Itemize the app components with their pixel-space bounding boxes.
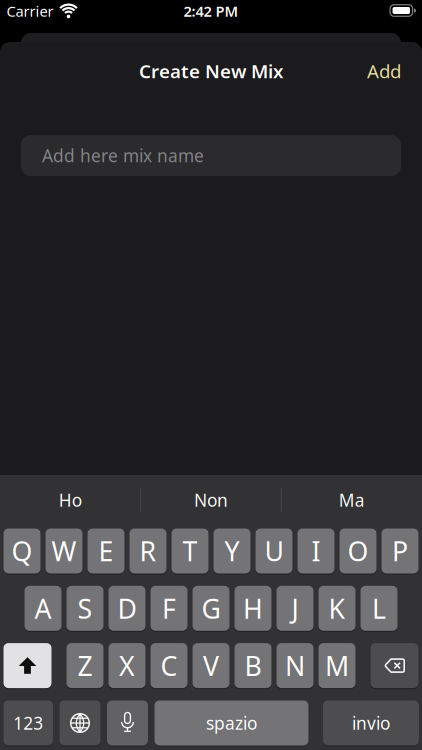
staticText: Z [77,648,92,683]
button[interactable]: C [150,642,187,689]
staticText: 123 [13,711,43,734]
staticText: Add [367,59,401,83]
button[interactable]: F [150,585,187,632]
button[interactable]: O [339,527,376,574]
button[interactable]: Next keyboard [59,699,100,746]
staticText: M [325,648,349,683]
staticText: W [51,533,76,569]
button[interactable]: Non [151,480,271,520]
button[interactable]: E [87,527,124,574]
staticText: O [347,533,368,569]
button[interactable]: X [108,642,145,689]
staticText: R [139,533,156,569]
staticText: Create New Mix [139,59,283,83]
button[interactable]: Y [213,527,250,574]
staticText: 2:42 PM [183,1,238,21]
button[interactable]: A [24,585,61,632]
button[interactable]: spazio [154,699,308,746]
button[interactable]: U [255,527,292,574]
staticText: invio [352,711,390,734]
staticText: spazio [206,711,257,734]
button[interactable]: T [171,527,208,574]
staticText: Y [224,533,239,569]
button[interactable]: Shift [3,642,51,689]
button[interactable]: J [276,585,313,632]
staticText: A [34,591,51,626]
button[interactable]: G [192,585,229,632]
button[interactable]: V [192,642,229,689]
button[interactable]: B [234,642,271,689]
staticText: C [160,648,177,683]
button[interactable]: Add [367,59,401,83]
button[interactable]: R [129,527,166,574]
button[interactable]: Ho [10,480,130,520]
staticText: Carrier [6,1,53,21]
button[interactable]: Q [3,527,40,574]
staticText: Non [194,488,228,511]
button[interactable]: D [108,585,145,632]
button[interactable]: S [66,585,103,632]
button[interactable]: 123 [3,699,53,746]
staticText: F [162,591,176,626]
staticText: G [201,591,220,626]
button[interactable]: Add here mix name [21,135,401,176]
staticText: E [98,533,113,569]
staticText: B [244,648,261,683]
staticText: Ma [339,488,365,511]
staticText: S [77,591,92,626]
button[interactable]: Ma [292,480,412,520]
staticText: I [311,533,320,569]
staticText: Q [11,533,32,569]
button[interactable]: Z [66,642,103,689]
staticText: U [264,533,283,569]
button[interactable]: W [45,527,82,574]
button[interactable]: N [276,642,313,689]
staticText: T [182,533,197,569]
button[interactable]: K [318,585,355,632]
button[interactable]: invio [323,699,419,746]
staticText: K [328,591,345,626]
staticText: Ho [59,488,82,511]
button[interactable]: P [381,527,418,574]
staticText: L [372,591,386,626]
button[interactable]: L [360,585,397,632]
staticText: P [392,533,408,569]
button[interactable]: Delete [370,642,418,689]
button[interactable]: Dictate [107,699,148,746]
button[interactable]: H [234,585,271,632]
button[interactable]: I [297,527,334,574]
button[interactable]: M [318,642,355,689]
staticText: Add here mix name [42,144,204,167]
staticText: V [203,648,219,683]
staticText: X [119,648,135,683]
staticText: D [117,591,136,626]
staticText: N [285,648,305,683]
staticText: H [243,591,263,626]
staticText: J [291,591,298,626]
